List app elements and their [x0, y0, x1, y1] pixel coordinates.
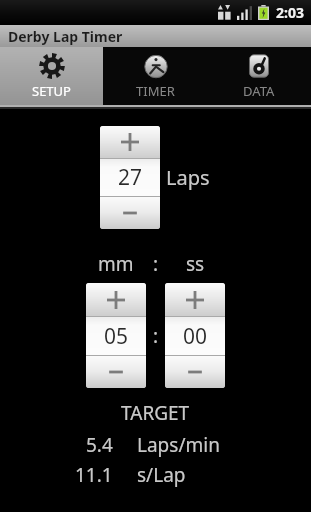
- button[interactable]: Increase: [86, 283, 146, 316]
- staticText: SETUP: [32, 82, 71, 100]
- button[interactable]: DATA: [207, 47, 311, 105]
- button[interactable]: Increase: [100, 126, 160, 158]
- staticText: :: [153, 323, 159, 349]
- staticText: DATA: [243, 82, 275, 100]
- staticText: Laps/min: [137, 432, 220, 458]
- staticText: 05: [104, 322, 129, 351]
- button[interactable]: Decrease: [100, 197, 160, 229]
- staticText: 27: [118, 163, 143, 192]
- staticText: 00: [183, 322, 208, 351]
- button[interactable]: Decrease: [165, 356, 225, 388]
- staticText: ss: [186, 251, 205, 277]
- staticText: Derby Lap Timer: [8, 27, 123, 46]
- staticText: TIMER: [136, 82, 175, 100]
- staticText: 11.1: [75, 462, 113, 488]
- staticText: Laps: [166, 164, 210, 191]
- button[interactable]: 05: [86, 317, 146, 355]
- staticText: 2:03: [276, 3, 304, 22]
- button[interactable]: SETUP: [0, 47, 103, 105]
- button[interactable]: TIMER: [103, 47, 207, 105]
- button[interactable]: Decrease: [86, 356, 146, 388]
- staticText: s/Lap: [137, 462, 186, 488]
- button[interactable]: 00: [165, 317, 225, 355]
- button[interactable]: 27: [100, 159, 160, 196]
- button[interactable]: Increase: [165, 283, 225, 316]
- staticText: mm: [98, 251, 134, 277]
- staticText: :: [153, 251, 159, 277]
- staticText: 5.4: [86, 432, 113, 458]
- staticText: TARGET: [121, 400, 190, 426]
